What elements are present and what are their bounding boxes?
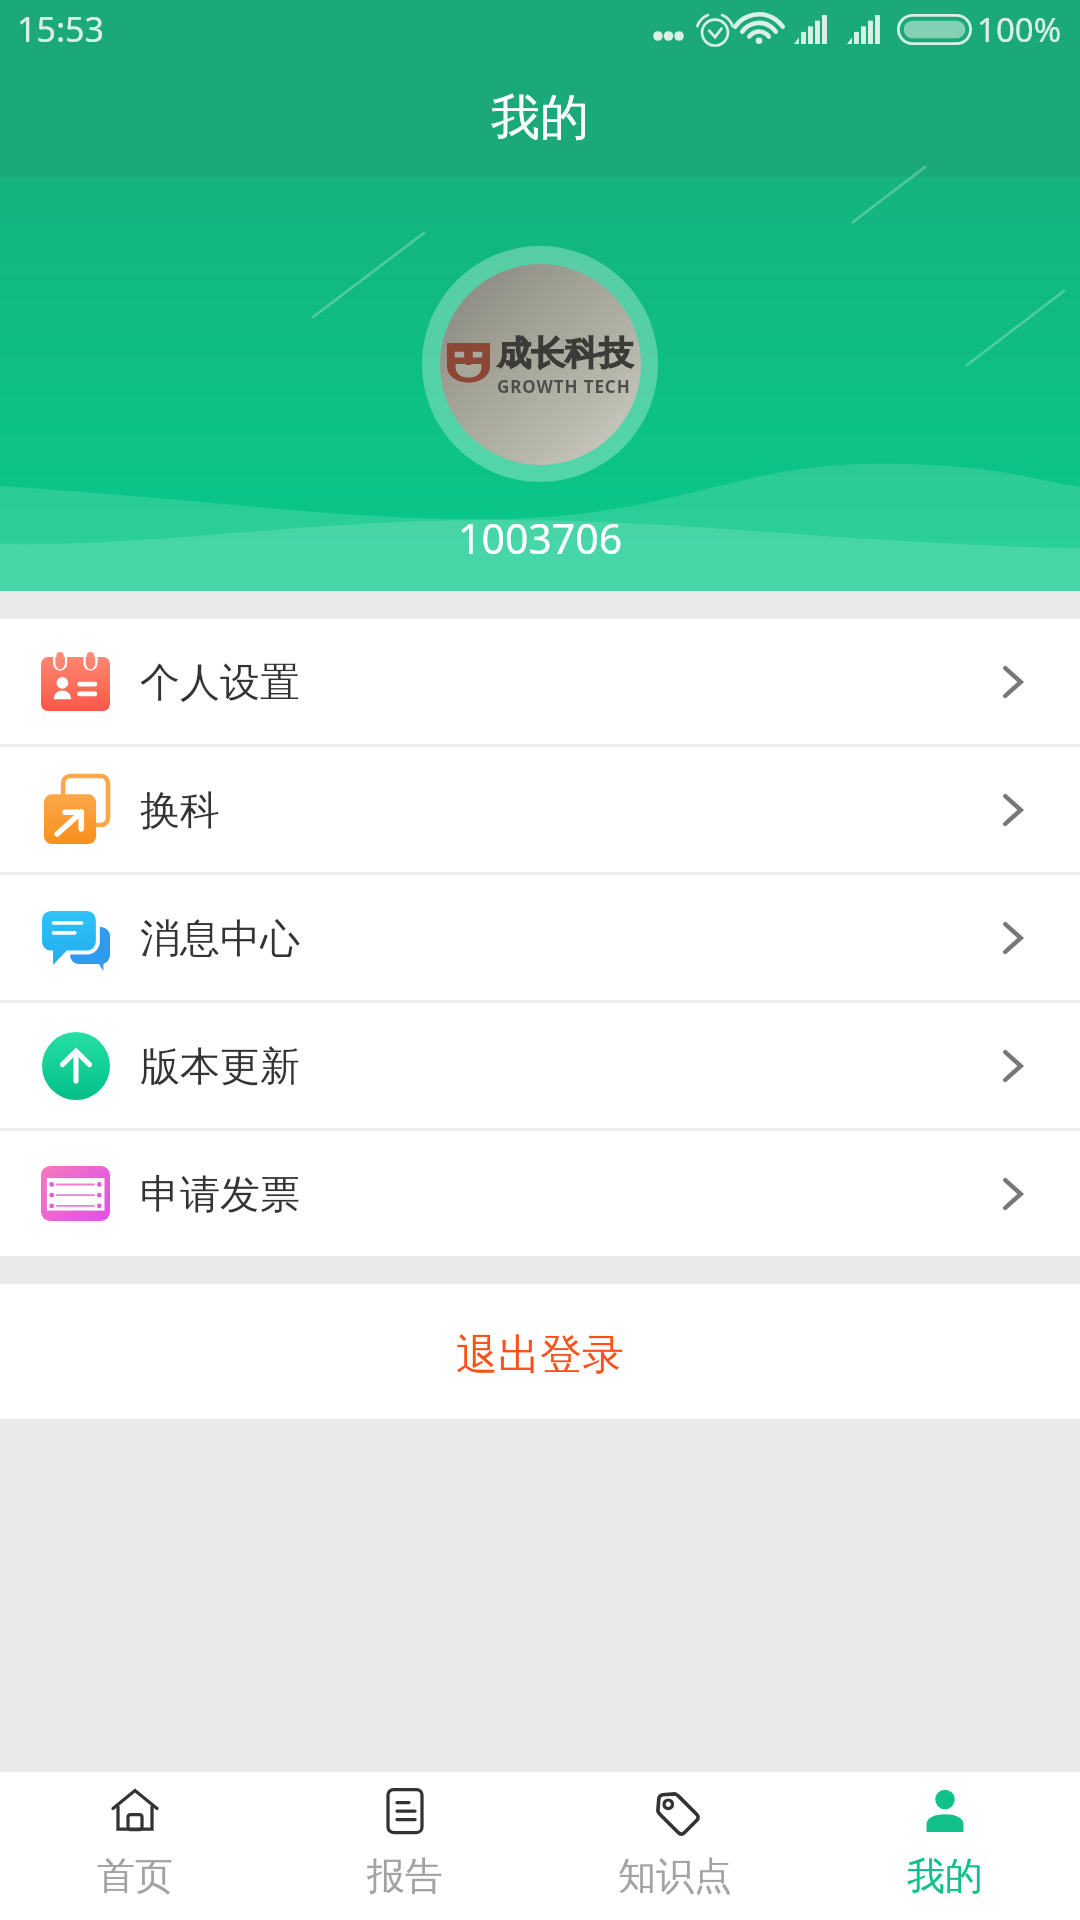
staticText: 申请发票 — [140, 1169, 300, 1219]
staticText: 版本更新 — [140, 1041, 300, 1091]
staticText: 我的 — [907, 1852, 983, 1900]
button[interactable]: 首页 — [0, 1772, 270, 1920]
button[interactable]: 退出登录 — [0, 1284, 1080, 1419]
staticText: GROWTH TECH — [497, 375, 631, 398]
staticText: 退出登录 — [456, 1329, 624, 1382]
staticText: 100% — [977, 7, 1062, 52]
staticText: 15:53 — [17, 6, 104, 52]
staticText: 知识点 — [618, 1852, 732, 1900]
staticText: 成长科技 — [497, 332, 633, 375]
button[interactable]: 换科 — [0, 747, 1080, 872]
button[interactable]: 版本更新 — [0, 1003, 1080, 1128]
staticText: 首页 — [97, 1852, 173, 1900]
button[interactable]: 申请发票 — [0, 1131, 1080, 1256]
button[interactable]: 消息中心 — [0, 875, 1080, 1000]
staticText: 个人设置 — [140, 657, 300, 707]
staticText: 我的 — [491, 87, 589, 149]
button[interactable]: 我的 — [810, 1772, 1080, 1920]
staticText: 换科 — [140, 785, 220, 835]
staticText: 消息中心 — [140, 913, 300, 963]
button[interactable]: 知识点 — [540, 1772, 810, 1920]
button[interactable]: 报告 — [270, 1772, 540, 1920]
staticText: 报告 — [367, 1852, 443, 1900]
button[interactable]: 个人设置 — [0, 619, 1080, 744]
staticText: 1003706 — [458, 510, 623, 566]
